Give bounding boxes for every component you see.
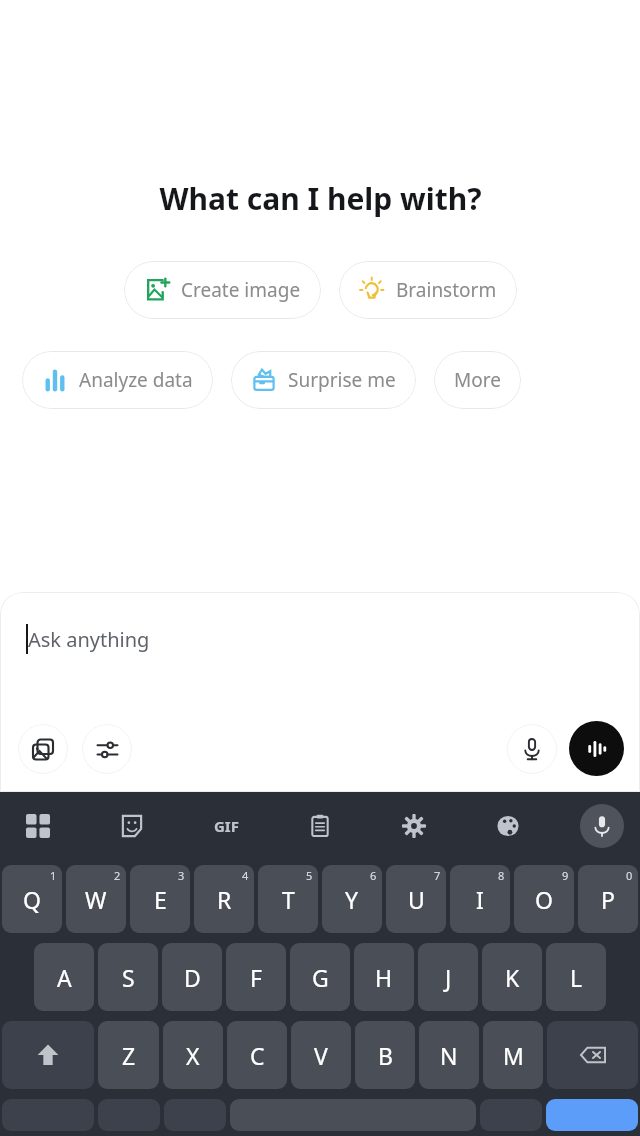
staticText: 7	[434, 868, 441, 883]
button[interactable]: C	[227, 1021, 287, 1089]
button[interactable]: Shift	[2, 1021, 94, 1089]
button[interactable]: M	[483, 1021, 543, 1089]
staticText: 8	[498, 868, 505, 883]
button[interactable]: H	[354, 943, 414, 1011]
staticText: I	[476, 884, 484, 915]
staticText: T	[282, 884, 295, 915]
staticText: 9	[562, 868, 569, 883]
button[interactable]: T	[258, 865, 318, 933]
button[interactable]: Z	[98, 1021, 159, 1089]
staticText: 2	[114, 868, 121, 883]
button[interactable]: More	[434, 351, 521, 409]
button[interactable]: Period	[480, 1099, 542, 1131]
staticText: GIF	[214, 816, 239, 836]
button[interactable]: W	[66, 865, 126, 933]
staticText: Surprise me	[288, 367, 396, 393]
staticText: 3	[178, 868, 185, 883]
button[interactable]: Apps	[16, 804, 60, 848]
button[interactable]: S	[98, 943, 158, 1011]
button[interactable]: A	[34, 943, 94, 1011]
staticText: 5	[306, 868, 313, 883]
button[interactable]: N	[419, 1021, 479, 1089]
staticText: W	[85, 884, 107, 915]
staticText: J	[445, 962, 452, 993]
button[interactable]: B	[355, 1021, 415, 1089]
button[interactable]: Stickers	[110, 804, 154, 848]
staticText: X	[186, 1040, 200, 1071]
button[interactable]: Themes	[486, 804, 530, 848]
button[interactable]: E	[130, 865, 190, 933]
button[interactable]: P	[578, 865, 638, 933]
button[interactable]: D	[162, 943, 222, 1011]
staticText: M	[503, 1040, 524, 1071]
staticText: Y	[345, 884, 359, 915]
button[interactable]: J	[418, 943, 478, 1011]
button[interactable]: I	[450, 865, 510, 933]
staticText: D	[184, 962, 201, 993]
staticText: N	[440, 1040, 458, 1071]
staticText: O	[535, 884, 553, 915]
button[interactable]: G	[290, 943, 350, 1011]
button[interactable]: Q	[2, 865, 62, 933]
staticText: V	[314, 1040, 328, 1071]
staticText: Ask anything	[28, 626, 150, 653]
button[interactable]: Brainstorm	[339, 261, 517, 319]
button[interactable]: Dictate	[507, 724, 557, 774]
button[interactable]: Voice input	[580, 804, 624, 848]
staticText: C	[250, 1040, 265, 1071]
staticText: More	[454, 367, 501, 393]
staticText: Z	[122, 1040, 136, 1071]
button[interactable]: Backspace	[547, 1021, 638, 1089]
button[interactable]: Surprise me	[231, 351, 416, 409]
staticText: G	[312, 962, 329, 993]
staticText: Create image	[181, 277, 301, 303]
staticText: A	[57, 962, 72, 993]
button[interactable]: R	[194, 865, 254, 933]
staticText: 0	[626, 868, 633, 883]
staticText: H	[375, 962, 393, 993]
staticText: K	[505, 962, 520, 993]
button[interactable]: Clipboard	[298, 804, 342, 848]
button[interactable]: Tools	[82, 724, 132, 774]
staticText: R	[217, 884, 232, 915]
staticText: E	[154, 884, 167, 915]
staticText: 1	[50, 868, 57, 883]
button[interactable]: Enter	[546, 1099, 638, 1131]
button[interactable]: Comma	[164, 1099, 226, 1131]
staticText: U	[408, 884, 425, 915]
button[interactable]: L	[546, 943, 606, 1011]
button[interactable]: U	[386, 865, 446, 933]
button[interactable]: K	[482, 943, 542, 1011]
button[interactable]: O	[514, 865, 574, 933]
button[interactable]: Voice mode	[569, 721, 624, 776]
staticText: Brainstorm	[396, 277, 497, 303]
button[interactable]: Settings	[392, 804, 436, 848]
button[interactable]: Y	[322, 865, 382, 933]
button[interactable]: Analyze data	[22, 351, 213, 409]
staticText: L	[570, 962, 583, 993]
staticText: S	[122, 962, 135, 993]
button[interactable]: X	[163, 1021, 223, 1089]
button[interactable]: V	[291, 1021, 351, 1089]
staticText: B	[378, 1040, 393, 1071]
staticText: 6	[370, 868, 377, 883]
button[interactable]: Add photos	[18, 724, 68, 774]
button[interactable]: GIF	[204, 804, 248, 848]
staticText: 4	[242, 868, 249, 883]
button[interactable]: F	[226, 943, 286, 1011]
staticText: Q	[23, 884, 41, 915]
button[interactable]: Emoji	[98, 1099, 160, 1131]
staticText: Analyze data	[79, 367, 193, 393]
button[interactable]: Create image	[124, 261, 321, 319]
staticText: F	[250, 962, 262, 993]
staticText: P	[601, 884, 615, 915]
staticText: What can I help with?	[159, 178, 482, 219]
